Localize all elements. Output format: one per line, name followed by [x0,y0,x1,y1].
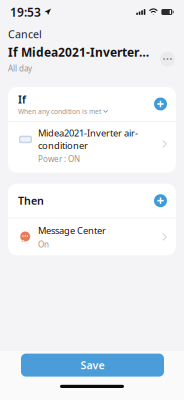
button[interactable]: Message Center [8,218,176,255]
button[interactable]: Save [21,354,164,377]
staticText: On [38,239,49,250]
staticText: 19:53 [10,4,41,20]
staticText: Save [80,358,104,372]
staticText: When any condition is met [18,107,101,116]
button[interactable]: Add [154,194,167,207]
staticText: Power : ON [38,153,80,164]
staticText: Midea2021-Inverter air- conditioner [38,127,138,151]
button[interactable]: Cancel [0,25,50,43]
staticText: Message Center [38,224,106,236]
staticText: Then [18,194,44,208]
button[interactable]: Midea2021-Inverter air- conditioner [8,122,176,173]
staticText: If Midea2021-Inverter ai… [8,44,150,60]
staticText: All day [8,63,32,74]
staticText: Cancel [8,27,42,41]
button[interactable]: More options [160,51,175,66]
button[interactable]: Add [154,97,167,110]
staticText: If [18,92,26,106]
